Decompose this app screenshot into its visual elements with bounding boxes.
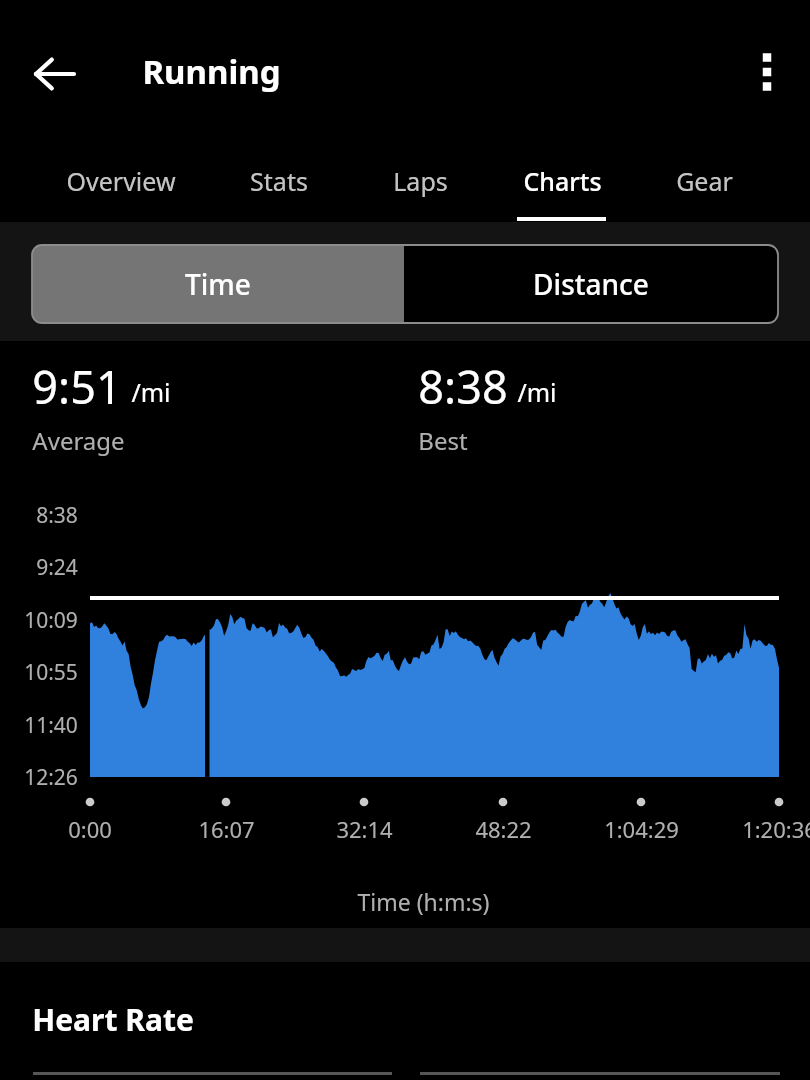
staticText: 16:07 <box>198 814 255 844</box>
staticText: Overview <box>66 164 176 198</box>
staticText: Time (h:m:s) <box>357 886 490 917</box>
staticText: 48:22 <box>475 814 532 844</box>
button[interactable]: Charts <box>492 144 632 218</box>
staticText: 8:38 <box>36 501 78 530</box>
button[interactable]: More options <box>742 40 792 104</box>
button[interactable]: Gear <box>634 144 774 218</box>
button[interactable]: Overview <box>51 144 191 218</box>
button[interactable]: Time <box>32 245 404 323</box>
staticText: 12:26 <box>24 763 78 792</box>
button[interactable]: Distance <box>404 245 778 323</box>
staticText: Average <box>32 424 125 457</box>
staticText: Stats <box>250 164 308 198</box>
staticText: Heart Rate <box>32 999 194 1040</box>
staticText: Distance <box>533 265 649 303</box>
button[interactable]: Laps <box>350 144 490 218</box>
staticText: 1:04:29 <box>604 814 679 844</box>
staticText: Charts <box>523 164 602 198</box>
staticText: 10:09 <box>24 606 78 635</box>
staticText: 32:14 <box>336 814 393 844</box>
staticText: /mi <box>131 375 171 409</box>
staticText: 11:40 <box>24 711 78 740</box>
button[interactable]: Stats <box>209 144 349 218</box>
staticText: Gear <box>676 164 733 198</box>
staticText: Laps <box>393 164 448 198</box>
staticText: 9:51 <box>32 356 122 417</box>
staticText: Time <box>185 265 251 303</box>
button[interactable]: Back <box>30 50 80 98</box>
staticText: Running <box>142 49 281 94</box>
staticText: 10:55 <box>24 658 78 687</box>
staticText: 0:00 <box>68 814 112 844</box>
staticText: Best <box>418 424 468 457</box>
staticText: /mi <box>517 375 557 409</box>
staticText: 9:24 <box>36 553 78 582</box>
staticText: 8:38 <box>418 356 508 417</box>
staticText: 1:20:36 <box>742 814 810 844</box>
